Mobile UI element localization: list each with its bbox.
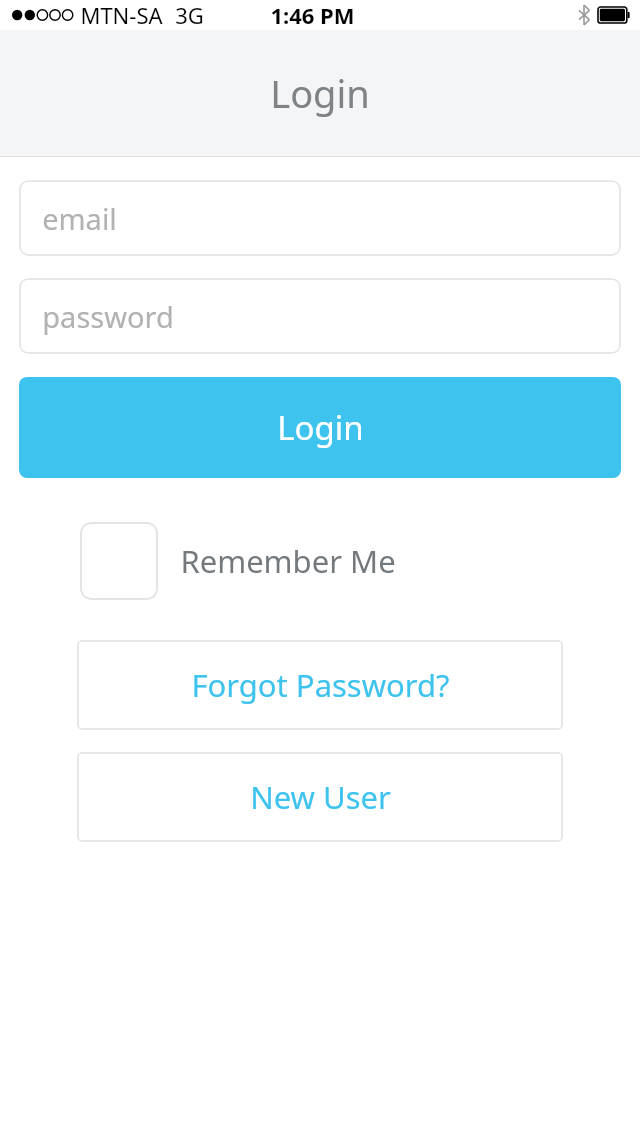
staticText: Login bbox=[277, 405, 364, 450]
staticText: New User bbox=[250, 776, 391, 818]
button[interactable]: Forgot Password? bbox=[77, 640, 563, 730]
staticText: Remember Me bbox=[180, 540, 396, 582]
button[interactable]: Login bbox=[19, 377, 621, 478]
staticText: Login bbox=[270, 67, 370, 119]
button[interactable]: Remember Me checkbox bbox=[80, 522, 396, 600]
staticText: 1:46 PM bbox=[270, 0, 355, 30]
other: Remember Me checkbox bbox=[80, 522, 158, 600]
staticText: password bbox=[42, 297, 174, 336]
button[interactable]: New User bbox=[77, 752, 563, 842]
button[interactable]: email bbox=[19, 180, 621, 256]
staticText: email bbox=[42, 199, 117, 238]
button[interactable]: password bbox=[19, 278, 621, 354]
staticText: 3G bbox=[175, 0, 204, 30]
staticText: MTN-SA bbox=[80, 0, 163, 30]
staticText: Forgot Password? bbox=[191, 664, 450, 706]
